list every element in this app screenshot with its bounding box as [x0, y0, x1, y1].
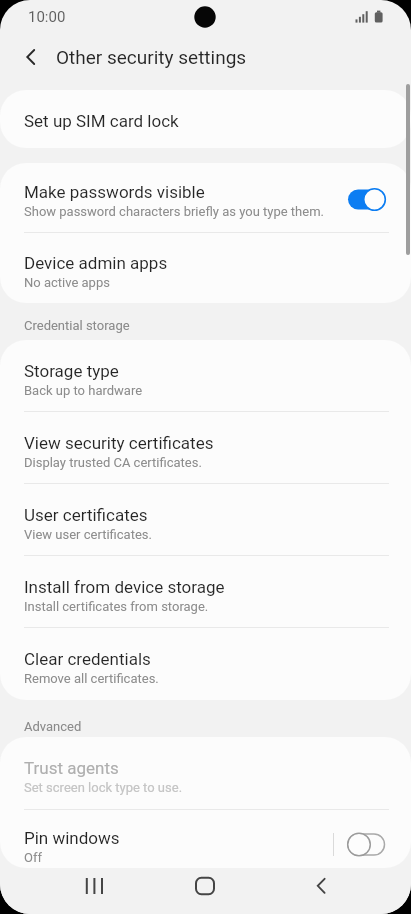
staticText: Pin windows — [24, 828, 120, 848]
staticText: Remove all certificates. — [24, 671, 159, 686]
staticText: Device admin apps — [24, 253, 168, 273]
button[interactable]: View security certificates — [0, 412, 411, 483]
staticText: 10:00 — [28, 8, 66, 26]
staticText: Advanced — [24, 719, 82, 734]
staticText: Set screen lock type to use. — [24, 780, 183, 795]
button[interactable]: Storage type — [0, 340, 411, 411]
button[interactable]: User certificates — [0, 484, 411, 555]
staticText: Set up SIM card lock — [24, 111, 179, 131]
staticText: Make passwords visible — [24, 182, 205, 202]
staticText: Credential storage — [24, 318, 130, 333]
button[interactable]: Pin windows — [0, 810, 411, 868]
staticText: Storage type — [24, 361, 119, 381]
staticText: Off — [24, 850, 42, 865]
staticText: View user certificates. — [24, 527, 152, 542]
staticText: Back up to hardware — [24, 383, 143, 398]
staticText: Show password characters briefly as you … — [24, 204, 324, 219]
staticText: Install certificates from storage. — [24, 599, 209, 614]
button[interactable] — [347, 833, 385, 856]
button[interactable]: Set up SIM card lock — [0, 90, 411, 148]
button[interactable]: Install from device storage — [0, 556, 411, 627]
button[interactable] — [304, 868, 340, 904]
button[interactable] — [348, 188, 386, 211]
staticText: Trust agents — [24, 758, 119, 778]
staticText: No active apps — [24, 275, 110, 290]
button[interactable] — [76, 868, 112, 904]
staticText: View security certificates — [24, 433, 214, 453]
staticText: Install from device storage — [24, 577, 225, 597]
staticText: Clear credentials — [24, 649, 151, 669]
button[interactable]: Clear credentials — [0, 628, 411, 699]
staticText: Other security settings — [56, 46, 247, 68]
button[interactable]: Trust agents — [0, 737, 411, 809]
button[interactable] — [13, 39, 49, 75]
staticText: Display trusted CA certificates. — [24, 455, 202, 470]
button[interactable]: Make passwords visible — [0, 163, 411, 232]
button[interactable] — [187, 868, 223, 904]
button[interactable]: Device admin apps — [0, 233, 411, 303]
staticText: User certificates — [24, 505, 148, 525]
